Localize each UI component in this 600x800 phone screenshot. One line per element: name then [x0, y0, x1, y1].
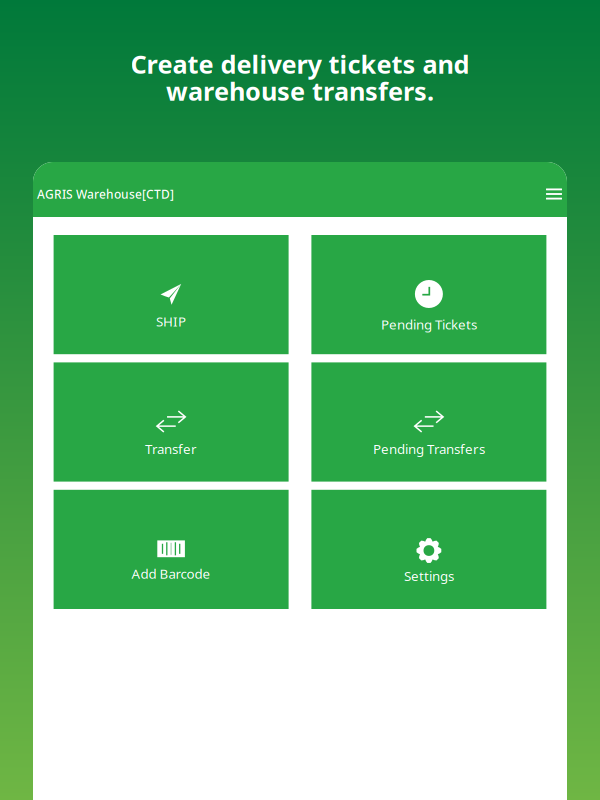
staticText: warehouse transfers.: [166, 74, 434, 108]
staticText: Pending Transfers: [373, 440, 485, 458]
staticText: Add Barcode: [132, 565, 211, 582]
button[interactable]: Menu: [541, 179, 567, 209]
staticText: Pending Tickets: [381, 315, 477, 333]
button[interactable]: Settings: [311, 490, 546, 609]
button[interactable]: SHIP: [54, 235, 289, 354]
staticText: Transfer: [145, 440, 197, 458]
staticText: Settings: [404, 567, 454, 585]
button[interactable]: Pending Tickets: [311, 235, 546, 354]
button[interactable]: Add Barcode: [54, 490, 289, 609]
button[interactable]: Pending Transfers: [311, 362, 546, 482]
button[interactable]: Transfer: [54, 362, 289, 482]
staticText: AGRIS Warehouse[CTD]: [37, 186, 174, 202]
staticText: Create delivery tickets and: [130, 47, 469, 81]
staticText: SHIP: [156, 312, 186, 330]
